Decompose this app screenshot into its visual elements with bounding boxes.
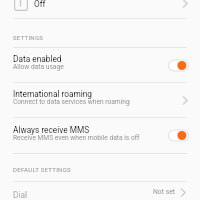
- staticText: Dial: [13, 190, 27, 200]
- button[interactable]: International roaming: [0, 83, 200, 117]
- staticText: Always receive MMS: [13, 125, 90, 135]
- button[interactable]: Always receive MMS: [0, 118, 200, 153]
- button[interactable]: Dial, Not set: [0, 182, 200, 200]
- staticText: Allow data usage: [13, 63, 64, 71]
- staticText: Connect to data services when roaming: [13, 98, 130, 106]
- staticText: SETTINGS: [13, 34, 44, 41]
- staticText: Data enabled: [13, 54, 62, 64]
- staticText: Receive MMS even when mobile data is off: [13, 134, 140, 142]
- button[interactable]: SIM 1 mobile data: Off: [0, 0, 200, 18]
- button[interactable]: Toggle setting: [168, 129, 189, 142]
- button[interactable]: Data enabled: [0, 48, 200, 82]
- staticText: Not set: [153, 188, 175, 196]
- staticText: DEFAULT SETTINGS: [13, 166, 71, 173]
- staticText: International roaming: [13, 89, 93, 99]
- button[interactable]: Toggle setting: [168, 59, 189, 72]
- staticText: Off: [34, 0, 46, 9]
